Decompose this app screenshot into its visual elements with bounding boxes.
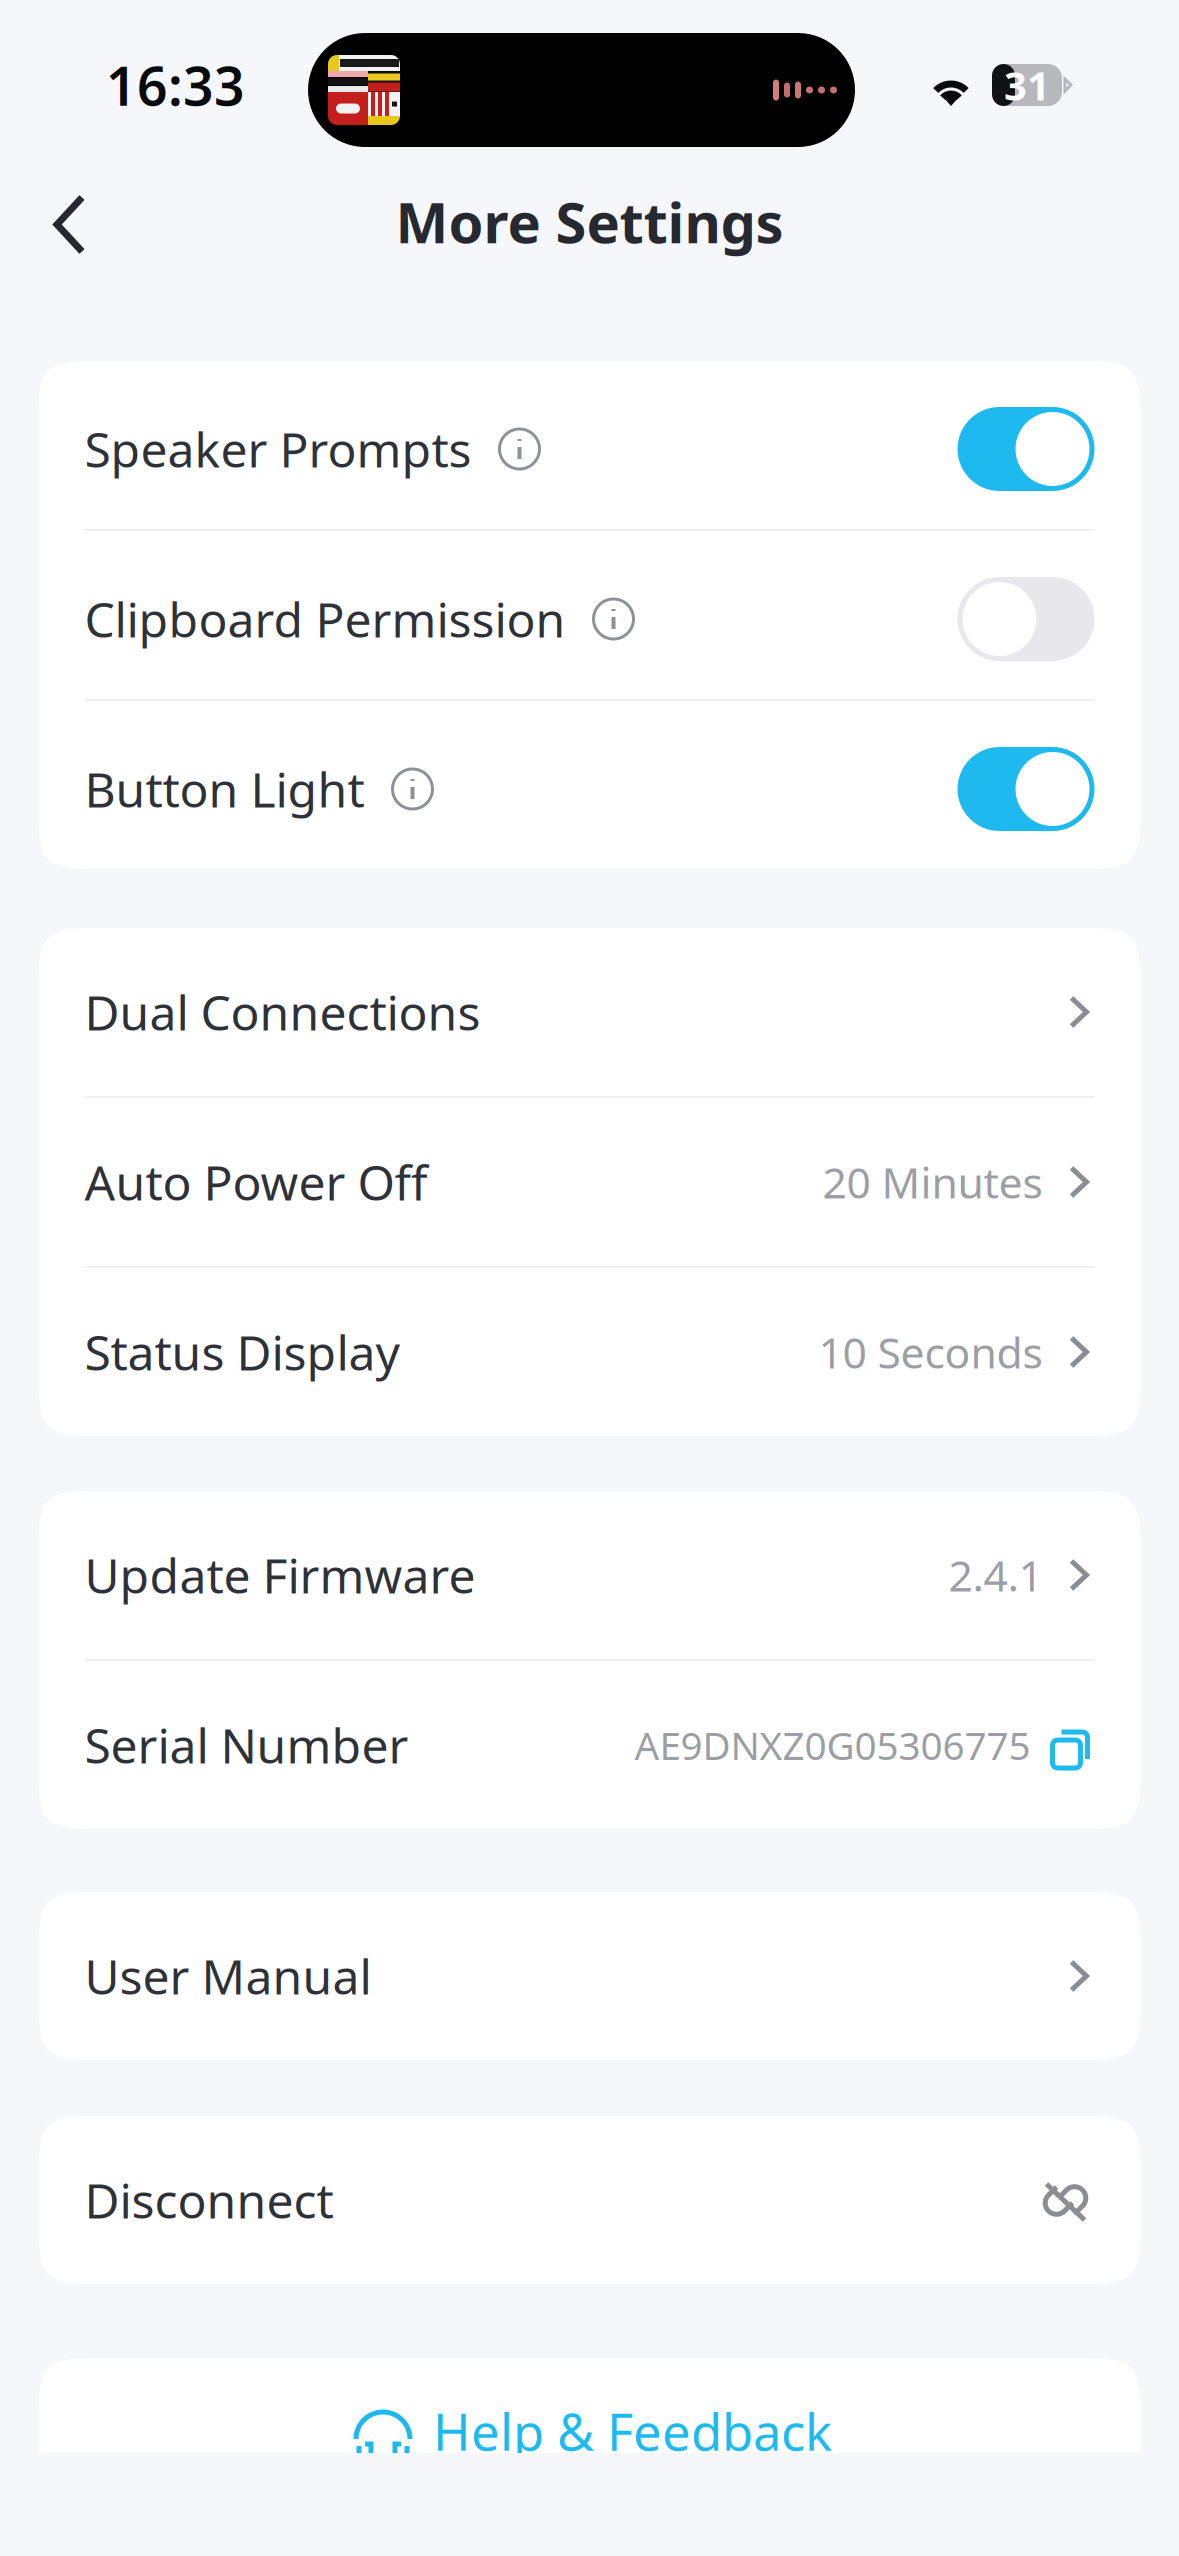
button[interactable]: Disconnect [38,2116,1140,2284]
staticText: 16:33 [106,50,245,120]
staticText: 2.4.1 [948,1547,1042,1603]
staticText: More Settings [395,184,783,259]
staticText: 20 Minutes [822,1154,1042,1210]
staticText: Status Display [84,1320,399,1384]
button[interactable]: Speaker Prompts [38,361,1140,529]
staticText: Auto Power Off [84,1150,427,1214]
button[interactable]: Serial Number [38,1661,1140,1829]
button[interactable]: Help & Feedback [38,2358,1140,2526]
button[interactable]: User Manual [38,1892,1140,2060]
button[interactable]: Status Display [38,1268,1140,1436]
staticText: Update Firmware [84,1543,475,1607]
staticText: Dual Connections [84,980,480,1044]
button[interactable]: Button Light [38,701,1140,869]
staticText: 31 [1004,58,1050,111]
button[interactable]: Update Firmware [38,1491,1140,1659]
staticText: Disconnect [84,2168,333,2232]
staticText: User Manual [84,1944,371,2008]
button[interactable]: Dual Connections [38,928,1140,1096]
staticText: 10 Seconds [818,1324,1042,1380]
staticText: Clipboard Permission [84,587,565,651]
staticText: Button Light [84,757,364,821]
button[interactable]: Auto Power Off [38,1098,1140,1266]
staticText: Speaker Prompts [84,417,471,481]
button[interactable]: Clipboard Permission [38,531,1140,699]
staticText: AE9DNXZ0G05306775 [634,1719,1030,1771]
staticText: Serial Number [84,1713,408,1777]
staticText: Help & Feedback [433,2397,832,2465]
button[interactable]: Back [0,169,123,279]
